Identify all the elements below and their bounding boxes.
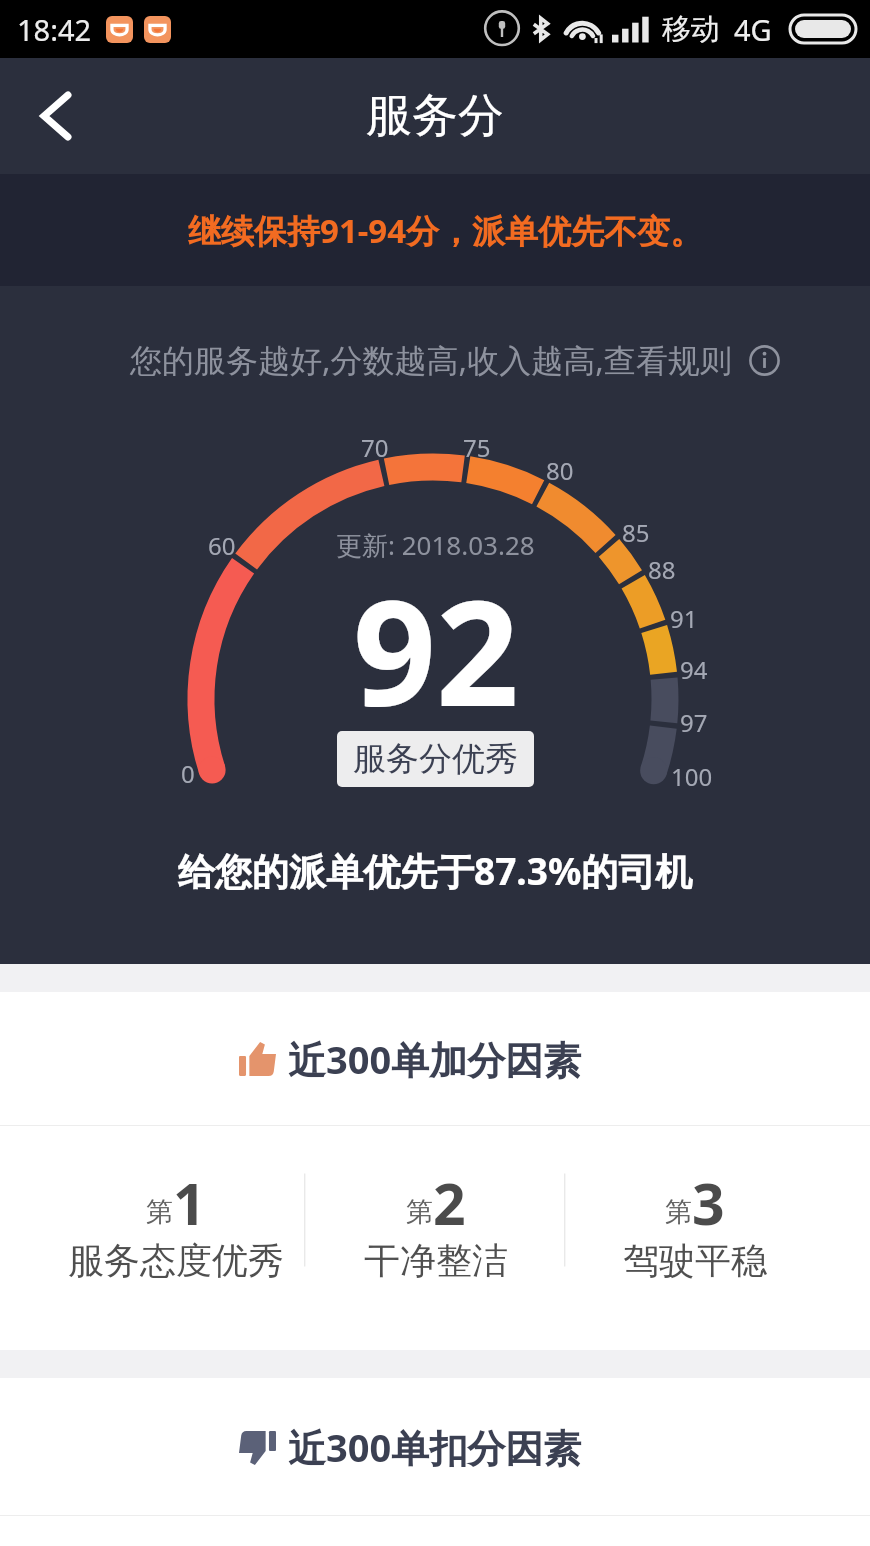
button[interactable]: 驾驶平稳: [623, 1238, 767, 1283]
staticText: 第: [665, 1195, 692, 1229]
button[interactable]: 干净整洁: [364, 1238, 508, 1283]
staticText: 2: [433, 1164, 466, 1242]
button[interactable]: 服务态度优秀: [68, 1238, 284, 1283]
button[interactable]: 第: [146, 1164, 206, 1242]
button[interactable]: Rules info: [749, 345, 780, 376]
staticText: 97: [680, 706, 708, 739]
staticText: 服务分优秀: [353, 738, 518, 780]
staticText: 100: [671, 760, 713, 793]
staticText: 给您的派单优先于87.3%的司机: [178, 845, 693, 896]
staticText: 0: [181, 757, 195, 790]
staticText: 更新: 2018.03.28: [336, 527, 535, 563]
staticText: 18:42: [17, 10, 92, 49]
staticText: 94: [680, 653, 708, 686]
staticText: 您的服务越好,分数越高,收入越高,查看规则: [130, 338, 732, 382]
staticText: 第: [146, 1195, 173, 1229]
staticText: 75: [463, 431, 491, 464]
staticText: 70: [361, 431, 389, 464]
button[interactable]: 第: [665, 1164, 725, 1242]
button[interactable]: 近300单加分因素: [0, 992, 870, 1125]
staticText: 92: [353, 551, 519, 748]
staticText: 继续保持91-94分，派单优先不变。: [188, 208, 704, 253]
staticText: 移动: [662, 11, 720, 48]
staticText: 88: [648, 553, 676, 586]
staticText: 4G: [734, 10, 772, 49]
button[interactable]: 第: [406, 1164, 466, 1242]
button[interactable]: Back: [22, 83, 88, 149]
staticText: 1: [173, 1164, 206, 1242]
staticText: 第: [406, 1195, 433, 1229]
staticText: 服务分: [366, 87, 504, 145]
staticText: 近300单加分因素: [288, 1033, 582, 1085]
staticText: 60: [208, 529, 236, 562]
staticText: 近300单扣分因素: [288, 1421, 582, 1473]
button[interactable]: 近300单扣分因素: [0, 1378, 870, 1515]
staticText: 80: [546, 454, 574, 487]
staticText: 3: [692, 1164, 725, 1242]
staticText: 85: [622, 516, 650, 549]
staticText: 91: [670, 602, 698, 635]
